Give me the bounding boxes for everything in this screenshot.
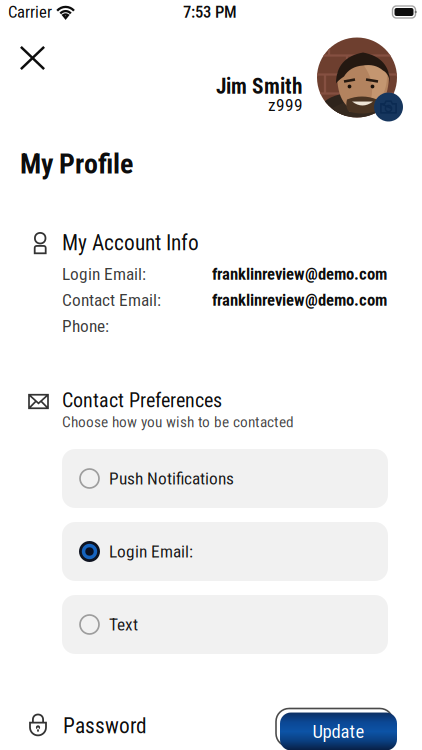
staticText: Login Email:: [109, 541, 193, 562]
button[interactable]: Push Notifications: [62, 449, 388, 508]
staticText: Contact Email:: [62, 290, 161, 310]
staticText: z999: [268, 95, 303, 115]
staticText: Push Notifications: [109, 468, 234, 489]
button[interactable]: Close: [10, 36, 54, 80]
staticText: Phone:: [62, 316, 109, 336]
staticText: My Profile: [20, 148, 133, 180]
staticText: Login Email:: [62, 264, 146, 284]
button[interactable]: Change profile photo: [317, 37, 397, 117]
staticText: Password: [63, 713, 147, 738]
staticText: Choose how you wish to be contacted: [62, 413, 294, 431]
staticText: Text: [109, 614, 138, 635]
staticText: Contact Preferences: [62, 389, 222, 412]
staticText: Jim Smith: [216, 74, 303, 99]
staticText: My Account Info: [62, 230, 199, 255]
staticText: franklinreview@demo.com: [212, 264, 387, 284]
staticText: Update: [312, 721, 364, 742]
staticText: 7:53 PM: [183, 2, 237, 22]
button[interactable]: Update: [274, 706, 395, 748]
staticText: Carrier: [8, 2, 52, 22]
button[interactable]: Text: [62, 595, 388, 654]
staticText: franklinreview@demo.com: [212, 290, 387, 310]
button[interactable]: Login Email:: [62, 522, 388, 581]
